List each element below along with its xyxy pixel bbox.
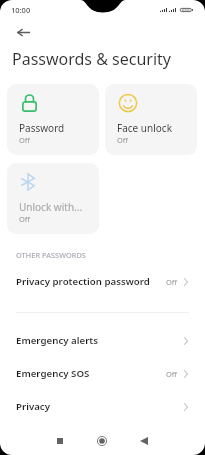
button[interactable]: Privacy — [0, 390, 205, 423]
button[interactable]: Back — [8, 17, 38, 47]
staticText: Password — [19, 121, 65, 135]
staticText: Privacy protection password — [16, 275, 150, 288]
staticText: 10:00 — [11, 5, 31, 15]
button[interactable]: Recent apps — [46, 431, 74, 450]
button[interactable]: Privacy protection password — [0, 265, 205, 298]
button[interactable]: Unlock with... — [7, 163, 99, 234]
staticText: Emergency SOS — [16, 367, 90, 380]
staticText: Privacy — [16, 400, 51, 413]
staticText: Face unlock — [117, 121, 172, 135]
button[interactable]: Emergency SOS — [0, 357, 205, 390]
staticText: Off — [19, 135, 31, 145]
staticText: Off — [166, 277, 178, 287]
button[interactable]: Home — [88, 431, 116, 450]
staticText: Emergency alerts — [16, 334, 99, 347]
staticText: Unlock with... — [19, 200, 83, 214]
button[interactable]: Password — [7, 84, 99, 155]
staticText: Off — [117, 135, 129, 145]
staticText: Passwords & security — [12, 48, 171, 70]
button[interactable]: Face unlock — [105, 84, 197, 155]
button[interactable]: Emergency alerts — [0, 324, 205, 357]
staticText: Off — [166, 369, 178, 379]
button[interactable]: Back — [130, 431, 158, 450]
staticText: Off — [19, 214, 31, 224]
staticText: OTHER PASSWORDS — [16, 250, 86, 260]
